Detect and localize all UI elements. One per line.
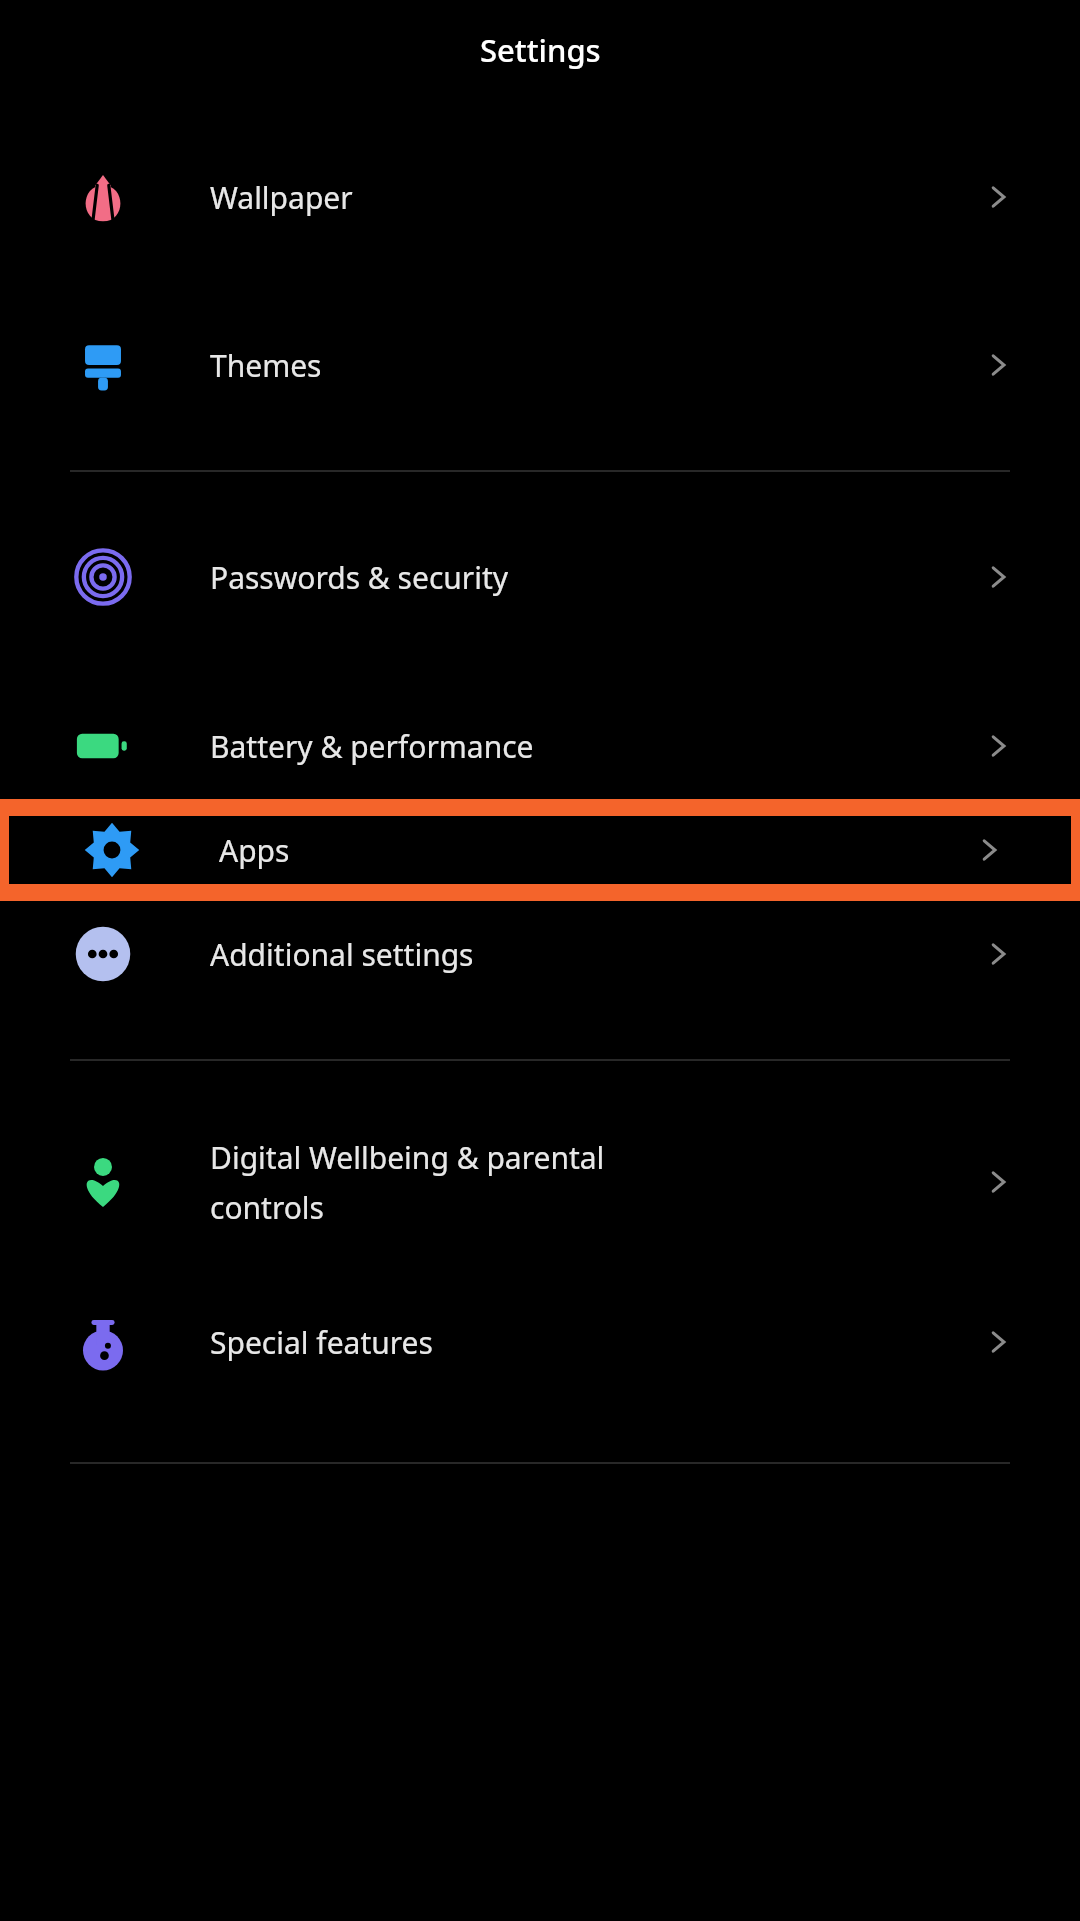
button[interactable]: Digital Wellbeing & parental	[0, 1118, 1080, 1246]
staticText: Passwords & security	[210, 557, 509, 598]
staticText: Special features	[210, 1322, 433, 1363]
button[interactable]: Special features	[0, 1308, 1080, 1376]
button[interactable]: Additional settings	[0, 920, 1080, 988]
button[interactable]: Themes	[0, 331, 1080, 399]
staticText: Settings	[480, 29, 601, 71]
button[interactable]: Battery & performance	[0, 712, 1080, 780]
other: Open	[978, 177, 1018, 217]
button[interactable]: Apps	[9, 816, 1071, 884]
staticText: Themes	[210, 345, 322, 386]
other: Open	[978, 1162, 1018, 1202]
other: Open	[978, 726, 1018, 766]
other: Open	[978, 345, 1018, 385]
other: Open	[969, 830, 1009, 870]
staticText: Apps	[219, 830, 290, 871]
staticText: Battery & performance	[210, 726, 534, 767]
other: Open	[978, 557, 1018, 597]
other: Open	[978, 934, 1018, 974]
staticText: Additional settings	[210, 934, 474, 975]
staticText: controls	[210, 1187, 324, 1228]
staticText: Digital Wellbeing & parental	[210, 1137, 605, 1178]
other: Open	[978, 1322, 1018, 1362]
staticText: Wallpaper	[210, 177, 353, 218]
button[interactable]: Wallpaper	[0, 163, 1080, 231]
button[interactable]: Passwords & security	[0, 543, 1080, 611]
